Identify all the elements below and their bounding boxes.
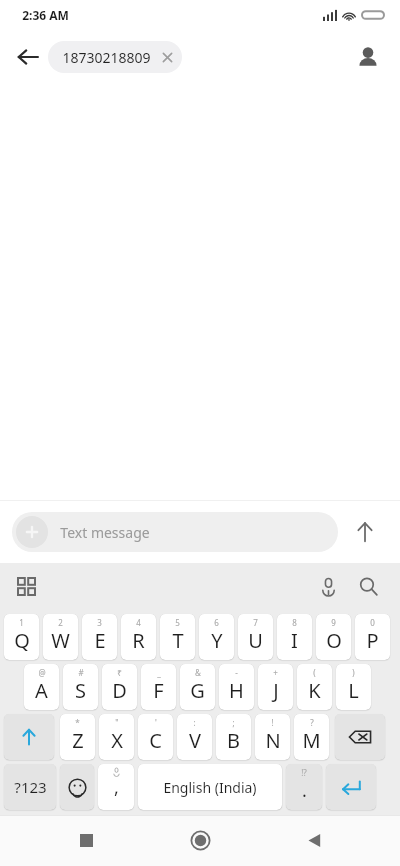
staticText: R	[132, 627, 145, 654]
staticText: _	[157, 667, 161, 678]
button[interactable]: Voice input	[308, 566, 348, 606]
button[interactable]: Contact	[346, 35, 390, 79]
staticText: 3	[97, 617, 102, 628]
button[interactable]: 0	[355, 614, 390, 660]
staticText: 2:36 AM	[22, 7, 69, 23]
staticText: )	[352, 667, 355, 678]
button[interactable]: Period	[286, 764, 322, 810]
staticText: W	[51, 627, 70, 654]
button[interactable]: 8	[277, 614, 312, 660]
button[interactable]: 7	[238, 614, 273, 660]
staticText: :	[193, 717, 196, 728]
staticText: J	[273, 677, 279, 704]
button[interactable]: ;	[216, 714, 251, 760]
staticText: E	[94, 627, 106, 654]
button[interactable]: Back	[286, 815, 342, 866]
button[interactable]: !	[255, 714, 290, 760]
staticText: U	[248, 627, 263, 654]
button[interactable]: ₹	[102, 664, 137, 710]
staticText: *	[75, 717, 80, 728]
staticText: C	[149, 727, 162, 754]
staticText: Text message	[60, 523, 150, 542]
button[interactable]: Shift	[4, 714, 54, 760]
staticText: N	[265, 727, 281, 754]
staticText: Z	[72, 727, 84, 754]
staticText: "	[115, 717, 119, 728]
button[interactable]: 18730218809	[48, 41, 182, 73]
button[interactable]: 1	[4, 614, 39, 660]
staticText: 0	[370, 617, 375, 628]
staticText: F	[153, 677, 164, 704]
button[interactable]: Send	[342, 509, 388, 555]
staticText: 18730218809	[62, 48, 151, 67]
staticText: @	[38, 667, 46, 678]
button[interactable]: @	[24, 664, 59, 710]
button[interactable]: "	[99, 714, 134, 760]
staticText: G	[190, 677, 205, 704]
staticText: &	[195, 667, 201, 678]
staticText: .	[302, 778, 307, 803]
button[interactable]: +	[258, 664, 293, 710]
staticText: K	[308, 677, 321, 704]
staticText: -	[235, 667, 238, 678]
staticText: A	[35, 677, 48, 704]
staticText: ?	[310, 717, 314, 728]
button[interactable]: Comma	[98, 764, 134, 810]
button[interactable]: _	[141, 664, 176, 710]
staticText: 9	[331, 617, 336, 628]
button[interactable]: #	[63, 664, 98, 710]
staticText: M	[302, 727, 321, 754]
staticText: !	[271, 717, 274, 728]
staticText: O	[326, 627, 342, 654]
staticText: X	[111, 727, 123, 754]
button[interactable]: (	[297, 664, 332, 710]
button[interactable]: Search	[348, 566, 388, 606]
button[interactable]: Back	[6, 35, 50, 79]
button[interactable]: English (India)	[138, 764, 282, 810]
button[interactable]: )	[336, 664, 371, 710]
button[interactable]: Enter	[326, 764, 376, 810]
staticText: #	[78, 667, 84, 678]
staticText: ;	[232, 717, 235, 728]
staticText: T	[172, 627, 184, 654]
staticText: I	[291, 627, 298, 654]
button[interactable]: Emoji	[60, 764, 94, 810]
staticText: 1	[19, 617, 24, 628]
button[interactable]: Keyboard options	[8, 568, 44, 604]
button[interactable]: '	[138, 714, 173, 760]
staticText: 7	[253, 617, 258, 628]
button[interactable]: 4	[121, 614, 156, 660]
staticText: Y	[211, 627, 223, 654]
button[interactable]: ?	[294, 714, 329, 760]
staticText: ₹	[117, 667, 122, 678]
staticText: D	[112, 677, 127, 704]
staticText: ,	[114, 775, 119, 800]
staticText: '	[155, 717, 157, 728]
button[interactable]: 9	[316, 614, 351, 660]
button[interactable]: Text message	[12, 512, 338, 552]
button[interactable]: ?123	[4, 764, 56, 810]
staticText: 8	[292, 617, 297, 628]
staticText: B	[227, 727, 240, 754]
button[interactable]: &	[180, 664, 215, 710]
staticText: English (India)	[163, 778, 257, 797]
button[interactable]: 3	[82, 614, 117, 660]
staticText: 6	[214, 617, 219, 628]
button[interactable]: *	[60, 714, 95, 760]
staticText: 5	[175, 617, 180, 628]
button[interactable]: Home	[172, 815, 228, 866]
staticText: V	[189, 727, 201, 754]
button[interactable]: 2	[43, 614, 78, 660]
button[interactable]: Backspace	[335, 714, 385, 760]
button[interactable]: -	[219, 664, 254, 710]
staticText: 2	[58, 617, 63, 628]
staticText: ?123	[14, 777, 47, 797]
staticText: L	[348, 677, 359, 704]
button[interactable]: :	[177, 714, 212, 760]
staticText: Q	[14, 627, 30, 654]
staticText: P	[366, 627, 379, 654]
staticText: S	[75, 677, 86, 704]
button[interactable]: 5	[160, 614, 195, 660]
button[interactable]: Recents	[58, 815, 114, 866]
button[interactable]: 6	[199, 614, 234, 660]
